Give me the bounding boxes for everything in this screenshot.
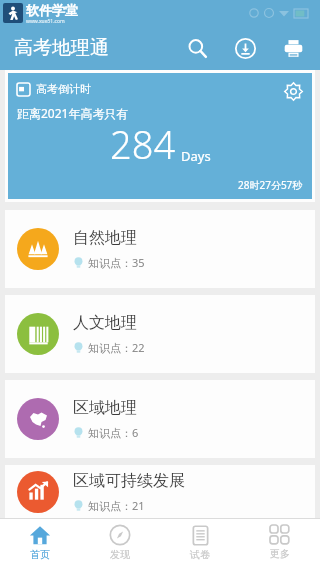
staticText: 区域地理: [73, 398, 137, 418]
button[interactable]: Download: [226, 29, 264, 67]
button[interactable]: 试卷: [160, 519, 240, 566]
button[interactable]: 首页: [0, 519, 80, 566]
staticText: 自然地理: [73, 228, 137, 248]
button[interactable]: 高考倒计时: [8, 73, 312, 199]
staticText: www.xue51.com: [26, 18, 65, 24]
staticText: 首页: [30, 548, 50, 561]
staticText: 28时27分57秒: [238, 178, 303, 192]
button[interactable]: Search: [178, 29, 216, 67]
staticText: 知识点：21: [88, 498, 145, 513]
staticText: 试卷: [190, 548, 210, 561]
button[interactable]: Print: [274, 29, 312, 67]
button[interactable]: 人文地理: [5, 295, 315, 373]
staticText: 高考倒计时: [36, 82, 91, 96]
staticText: 知识点：35: [88, 255, 145, 270]
staticText: 人文地理: [73, 313, 137, 333]
staticText: 软件学堂: [26, 2, 78, 18]
button[interactable]: Settings: [278, 76, 308, 106]
staticText: 发现: [110, 548, 130, 561]
staticText: 知识点：6: [88, 425, 139, 440]
button[interactable]: 更多: [240, 519, 320, 566]
button[interactable]: 发现: [80, 519, 160, 566]
staticText: 更多: [270, 547, 290, 560]
staticText: 区域可持续发展: [73, 471, 185, 491]
staticText: 284: [110, 118, 176, 170]
button[interactable]: 自然地理: [5, 210, 315, 288]
staticText: Days: [181, 147, 211, 165]
staticText: 距离2021年高考只有: [17, 105, 129, 121]
staticText: 知识点：22: [88, 340, 145, 355]
staticText: 高考地理通: [14, 36, 109, 60]
button[interactable]: 区域地理: [5, 380, 315, 458]
button[interactable]: 区域可持续发展: [5, 465, 315, 518]
